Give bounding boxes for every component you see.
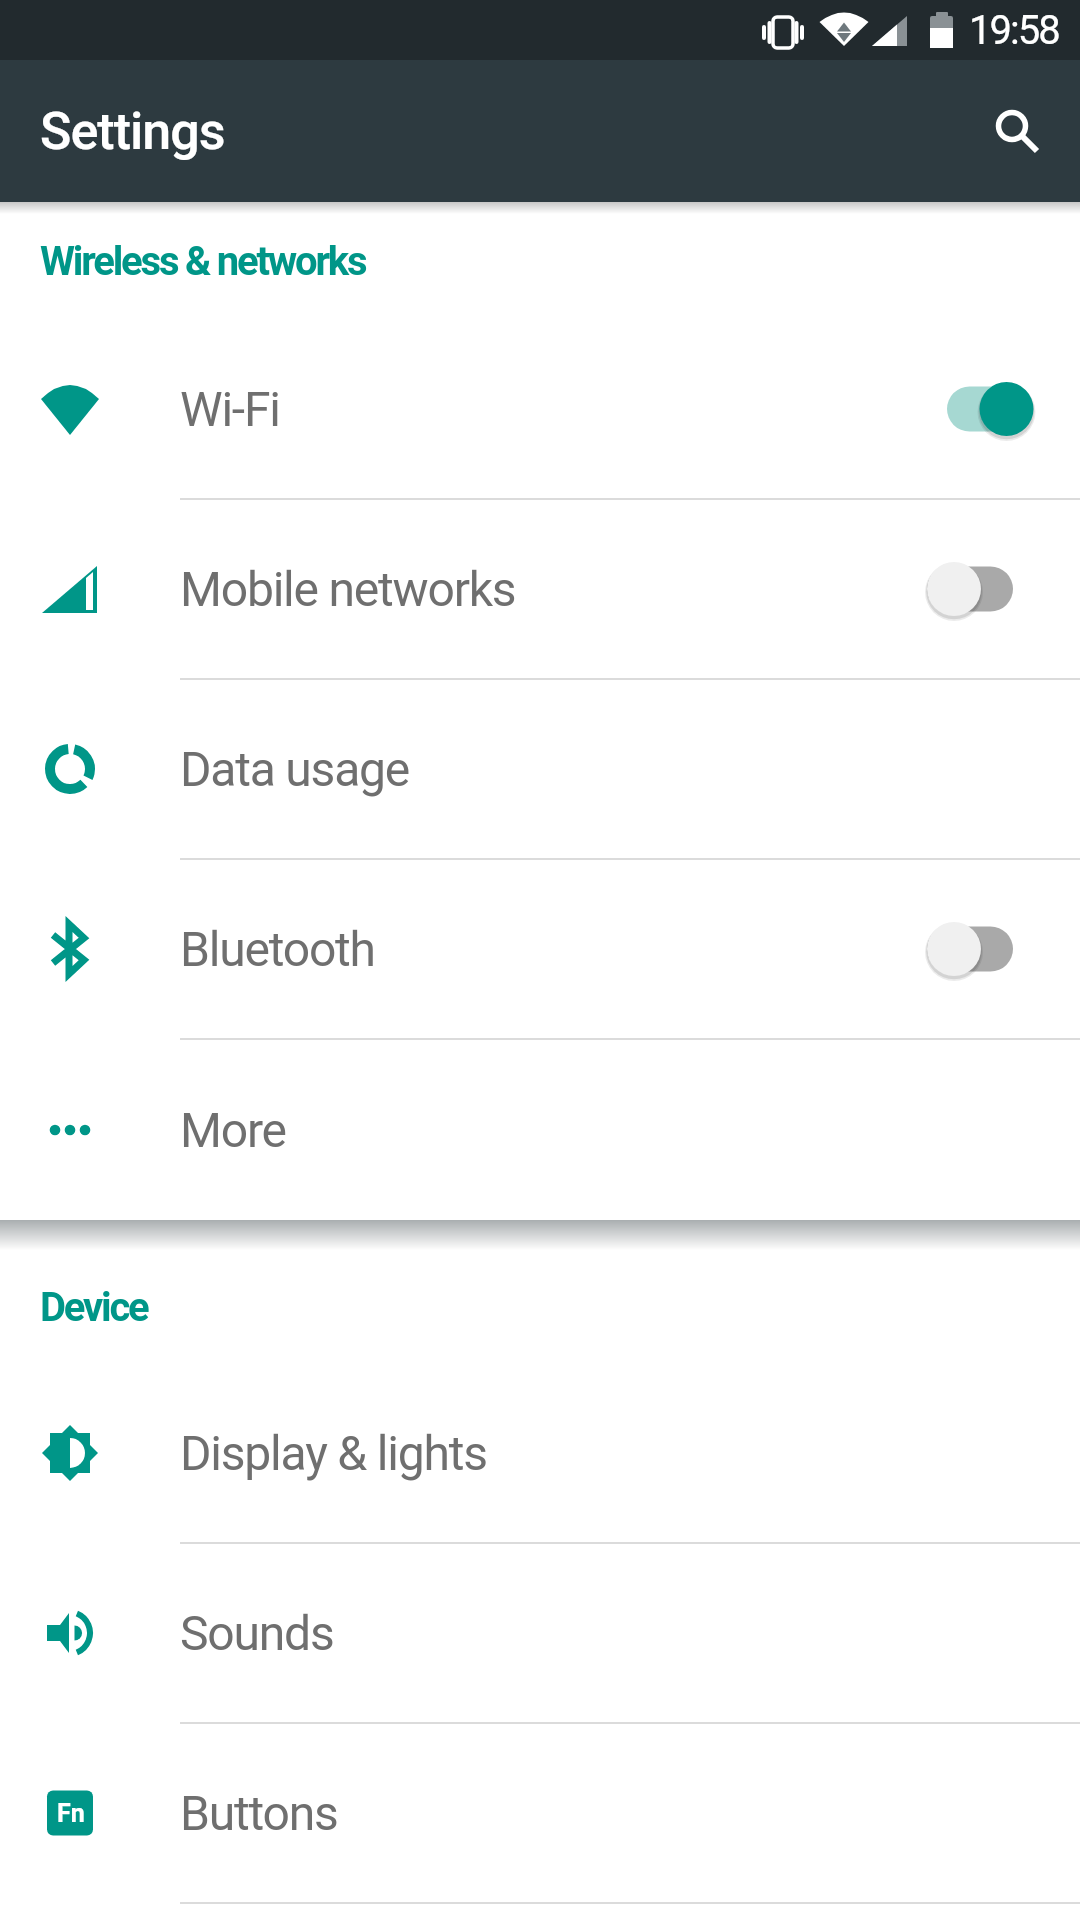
staticText: Mobile networks (180, 561, 516, 617)
staticText: Bluetooth (180, 921, 375, 977)
staticText: Buttons (180, 1785, 338, 1841)
button[interactable]: Display & lights (0, 1364, 1080, 1542)
staticText: Data usage (180, 741, 410, 797)
button[interactable]: Bluetooth (0, 860, 1080, 1038)
button[interactable] (930, 899, 1040, 999)
button[interactable]: Mobile networks (0, 500, 1080, 678)
staticText: Wireless & networks (40, 238, 366, 285)
staticText: Settings (40, 101, 225, 162)
staticText: Display & lights (180, 1425, 487, 1481)
staticText: Sounds (180, 1605, 334, 1661)
staticText: 19:58 (969, 7, 1059, 54)
button[interactable]: Wi-Fi (0, 320, 1080, 498)
button[interactable]: Sounds (0, 1544, 1080, 1722)
staticText: Wi-Fi (180, 381, 280, 437)
button[interactable]: Data usage (0, 680, 1080, 858)
button[interactable] (980, 95, 1052, 167)
button[interactable] (930, 539, 1040, 639)
button[interactable]: More (0, 1040, 1080, 1220)
button[interactable]: Fn (0, 1724, 1080, 1902)
staticText: Fn (57, 1799, 85, 1828)
staticText: More (180, 1102, 286, 1158)
button[interactable] (930, 359, 1040, 459)
staticText: Device (40, 1284, 148, 1331)
